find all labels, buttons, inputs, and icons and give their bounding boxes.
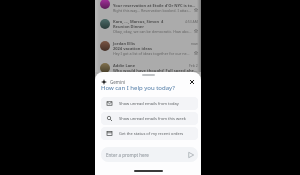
- staticText: Right this way... Reservation booked. I …: [113, 8, 193, 13]
- staticText: Hey I got a list of ideas together for o…: [113, 51, 193, 56]
- staticText: Kara, ..., Marcus, Simon 4: [113, 19, 183, 24]
- staticText: Gemini: [110, 79, 126, 85]
- button[interactable]: Get the status of my recent orders: [101, 127, 198, 140]
- staticText: Show unread emails from this week: [119, 116, 186, 121]
- button[interactable]: Jordan Ellis: [95, 38, 201, 60]
- staticText: 2024 vacation ideas: [113, 46, 152, 51]
- staticText: Addie Lane: [113, 63, 187, 68]
- button[interactable]: Show unread emails from today: [101, 97, 198, 110]
- staticText: How can I help you today?: [101, 84, 175, 92]
- staticText: 4:53 AM: [185, 19, 198, 24]
- button[interactable]: Kara, ..., Marcus, Simon 4: [95, 16, 201, 38]
- button[interactable]: Your reservation at Etoile d'Or NYC is t…: [95, 0, 201, 16]
- button[interactable]: Show unread emails from this week: [101, 112, 198, 125]
- staticText: Reunion Dinner: [113, 24, 145, 29]
- button[interactable]: Enter a prompt here: [101, 147, 198, 162]
- staticText: Enter a prompt here: [106, 152, 149, 158]
- button[interactable]: Close: [187, 77, 196, 86]
- staticText: now: [191, 41, 198, 46]
- staticText: Who would have thought! Full speed ahead…: [113, 68, 198, 73]
- staticText: Feb 2: [189, 63, 198, 68]
- staticText: Your reservation at Etoile d'Or NYC is t…: [113, 3, 196, 8]
- staticText: Show unread emails from today: [119, 101, 179, 106]
- staticText: Okay, okay, we can be democratic. How ab…: [113, 29, 193, 34]
- staticText: Jordan Ellis: [113, 41, 189, 46]
- button[interactable]: Addie Lane: [95, 60, 201, 82]
- staticText: Get the status of my recent orders: [119, 131, 184, 136]
